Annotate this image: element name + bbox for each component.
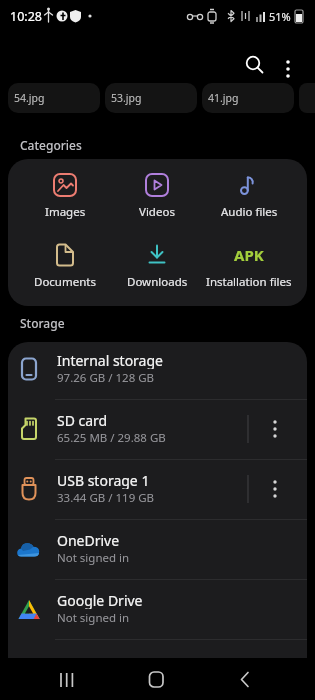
staticText: 53.jpg	[111, 91, 142, 105]
staticText: Videos	[139, 204, 175, 220]
button[interactable]	[227, 660, 267, 698]
staticText: Installation files	[206, 274, 292, 290]
staticText: Downloads	[127, 274, 188, 290]
button[interactable]	[8, 340, 307, 398]
staticText: OneDrive	[57, 531, 120, 549]
staticText: APK	[234, 245, 264, 265]
button[interactable]: Audio files	[203, 159, 295, 229]
staticText: Audio files	[221, 204, 278, 220]
button[interactable]	[8, 520, 307, 578]
button[interactable]: 41.jpg	[202, 83, 294, 113]
staticText: Categories	[20, 137, 82, 153]
staticText: Documents	[34, 274, 96, 290]
staticText: Google Drive	[57, 591, 143, 609]
button[interactable]: Videos	[111, 159, 203, 229]
button[interactable]	[274, 45, 304, 85]
staticText: 54.jpg	[14, 91, 45, 105]
button[interactable]: 53.jpg	[105, 83, 197, 113]
staticText: 51%	[269, 9, 291, 24]
staticText: Internal storage	[57, 351, 163, 369]
staticText: 65.25 MB / 29.88 GB	[57, 430, 166, 446]
staticText: Storage	[20, 315, 65, 331]
button[interactable]	[47, 660, 87, 698]
staticText: SD card	[57, 411, 108, 429]
button[interactable]: Downloads	[111, 229, 203, 299]
button[interactable]: APK	[203, 229, 295, 299]
button[interactable]: Documents	[19, 229, 111, 299]
button[interactable]: 54.jpg	[8, 83, 100, 113]
button[interactable]	[261, 413, 289, 445]
button[interactable]	[8, 580, 307, 638]
button[interactable]	[8, 400, 307, 458]
staticText: 97.26 GB / 128 GB	[57, 370, 155, 386]
staticText: Images	[45, 204, 86, 220]
staticText: Not signed in	[57, 550, 130, 566]
button[interactable]	[261, 473, 289, 505]
staticText: Not signed in	[57, 610, 130, 626]
button[interactable]: Images	[19, 159, 111, 229]
button[interactable]	[235, 45, 275, 85]
button[interactable]	[137, 660, 177, 698]
staticText: USB storage 1	[57, 471, 150, 489]
button[interactable]	[8, 460, 307, 518]
staticText: 10:28	[10, 8, 42, 25]
staticText: 41.jpg	[208, 91, 239, 105]
staticText: 33.44 GB / 119 GB	[57, 490, 155, 506]
